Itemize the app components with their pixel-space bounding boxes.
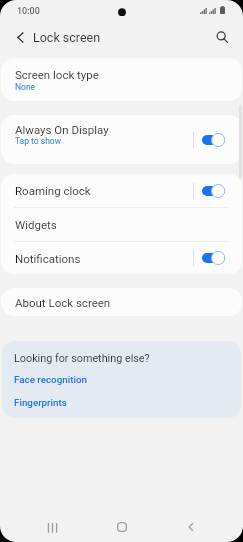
staticText: Tap to show <box>15 136 62 146</box>
button[interactable]: Search <box>208 23 236 51</box>
staticText: Lock screen <box>33 30 101 45</box>
button[interactable]: Toggle <box>202 132 226 148</box>
staticText: Roaming clock <box>15 184 91 197</box>
staticText: None <box>15 82 36 92</box>
staticText: Screen lock type <box>15 68 99 81</box>
button[interactable]: Back <box>173 512 209 542</box>
staticText: Always On Display <box>15 123 109 136</box>
staticText: 10:00 <box>17 6 40 17</box>
staticText: About Lock screen <box>15 296 111 309</box>
button[interactable]: Widgets <box>1 208 242 241</box>
button[interactable]: Toggle <box>202 183 226 199</box>
button[interactable]: Toggle <box>202 250 226 266</box>
button[interactable]: Face recognition <box>14 374 87 385</box>
button[interactable]: Recents <box>34 512 70 542</box>
button[interactable]: Fingerprints <box>14 397 67 408</box>
staticText: Looking for something else? <box>14 352 150 365</box>
button[interactable]: Always On Display <box>1 115 242 164</box>
staticText: Widgets <box>15 218 57 231</box>
button[interactable]: About Lock screen <box>1 288 242 316</box>
button[interactable]: Roaming clock <box>1 174 242 207</box>
button[interactable]: Notifications <box>1 242 242 274</box>
button[interactable]: Screen lock type <box>1 58 242 101</box>
button[interactable]: Back <box>6 23 34 51</box>
staticText: Notifications <box>15 252 81 265</box>
button[interactable]: Home <box>104 512 140 542</box>
